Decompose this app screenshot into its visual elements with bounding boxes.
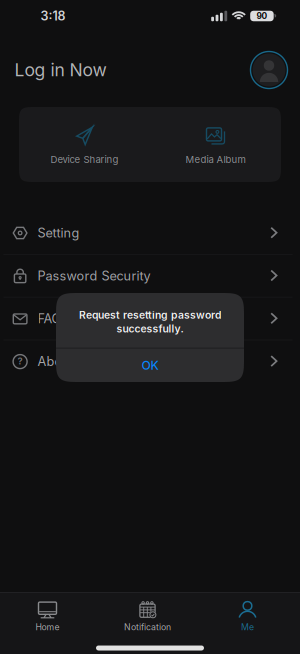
staticText: OK (141, 358, 158, 372)
staticText: FAQ (37, 311, 61, 326)
staticText: Notification (124, 622, 171, 632)
button[interactable]: Media Album (150, 107, 281, 182)
staticText: Password Security (37, 268, 150, 283)
staticText: Setting (37, 226, 79, 240)
button[interactable]: Home (0, 596, 97, 636)
button[interactable]: Setting (0, 212, 300, 254)
button[interactable]: Device Sharing (19, 107, 150, 182)
button[interactable]: Notification (97, 596, 197, 636)
staticText: About (37, 354, 74, 369)
button[interactable]: Me (197, 596, 297, 636)
staticText: Log in Now (14, 60, 106, 80)
button[interactable]: ? (0, 340, 300, 382)
button[interactable]: FAQ (0, 298, 300, 340)
button[interactable]: OK (56, 348, 244, 382)
staticText: successfully. (116, 323, 183, 335)
staticText: Device Sharing (50, 154, 118, 165)
button[interactable]: Profile (250, 51, 287, 88)
button[interactable]: Password Security (0, 255, 300, 297)
staticText: 3:18 (40, 9, 65, 23)
staticText: Media Album (185, 154, 245, 165)
staticText: 90 (256, 11, 267, 21)
staticText: Request resetting password (79, 309, 221, 321)
staticText: Home (35, 622, 59, 632)
staticText: ? (17, 355, 22, 366)
staticText: Me (241, 622, 254, 632)
